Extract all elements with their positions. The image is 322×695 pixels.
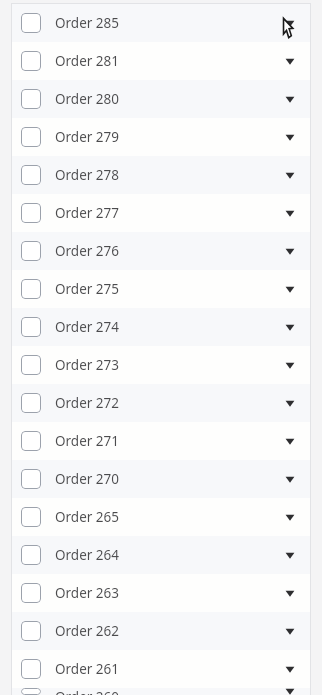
button[interactable]: Select order bbox=[21, 688, 41, 695]
button[interactable]: Expand order bbox=[277, 390, 303, 416]
staticText: Order 280 bbox=[55, 90, 120, 108]
button[interactable]: Select order bbox=[21, 203, 41, 223]
button[interactable]: Select order bbox=[21, 393, 41, 413]
button[interactable]: Select order bbox=[21, 165, 41, 185]
button[interactable]: Select order bbox=[11, 270, 311, 308]
button[interactable]: Select order bbox=[11, 650, 311, 688]
staticText: Order 264 bbox=[55, 546, 120, 564]
staticText: Order 263 bbox=[55, 584, 120, 602]
button[interactable]: Expand order bbox=[277, 162, 303, 188]
button[interactable]: Select order bbox=[11, 232, 311, 270]
button[interactable]: Select order bbox=[21, 13, 41, 33]
button[interactable]: Expand order bbox=[277, 428, 303, 454]
button[interactable]: Select order bbox=[11, 346, 311, 384]
button[interactable]: Expand order bbox=[277, 86, 303, 112]
button[interactable]: Expand order bbox=[277, 276, 303, 302]
button[interactable]: Select order bbox=[11, 80, 311, 118]
button[interactable]: Select order bbox=[11, 156, 311, 194]
button[interactable]: Select order bbox=[21, 89, 41, 109]
button[interactable]: Expand order bbox=[277, 314, 303, 340]
button[interactable]: Expand order bbox=[277, 48, 303, 74]
button[interactable]: Select order bbox=[21, 241, 41, 261]
button[interactable]: Expand order bbox=[277, 466, 303, 492]
staticText: Order 279 bbox=[55, 128, 120, 146]
button[interactable]: Select order bbox=[11, 574, 311, 612]
staticText: Order 276 bbox=[55, 242, 120, 260]
staticText: Order 273 bbox=[55, 356, 120, 374]
staticText: Order 270 bbox=[55, 470, 120, 488]
button[interactable]: Expand order bbox=[277, 124, 303, 150]
button[interactable]: Expand order bbox=[277, 580, 303, 606]
staticText: Order 275 bbox=[55, 280, 120, 298]
button[interactable]: Expand order bbox=[277, 542, 303, 568]
staticText: Order 262 bbox=[55, 622, 120, 640]
button[interactable]: Select order bbox=[21, 507, 41, 527]
button[interactable]: Select order bbox=[21, 355, 41, 375]
button[interactable]: Select order bbox=[21, 127, 41, 147]
button[interactable]: Expand order bbox=[277, 656, 303, 682]
button[interactable]: Expand order bbox=[277, 200, 303, 226]
staticText: Order 265 bbox=[55, 508, 120, 526]
staticText: Order 274 bbox=[55, 318, 120, 336]
button[interactable]: Select order bbox=[11, 308, 311, 346]
button[interactable]: Select order bbox=[11, 422, 311, 460]
staticText: Order 261 bbox=[55, 660, 120, 678]
button[interactable]: Select order bbox=[21, 583, 41, 603]
button[interactable]: Select order bbox=[11, 498, 311, 536]
button[interactable]: Select order bbox=[11, 536, 311, 574]
staticText: Order 278 bbox=[55, 166, 120, 184]
button[interactable]: Select order bbox=[11, 4, 311, 42]
staticText: Order 281 bbox=[55, 52, 120, 70]
staticText: Order 277 bbox=[55, 204, 120, 222]
button[interactable]: Select order bbox=[11, 384, 311, 422]
button[interactable]: Expand order bbox=[277, 238, 303, 264]
button[interactable]: Select order bbox=[21, 51, 41, 71]
button[interactable]: Expand order bbox=[277, 618, 303, 644]
button[interactable]: Expand order bbox=[277, 10, 303, 36]
staticText: Order 272 bbox=[55, 394, 120, 412]
button[interactable]: Select order bbox=[21, 469, 41, 489]
button[interactable]: Select order bbox=[21, 621, 41, 641]
button[interactable]: Select order bbox=[11, 194, 311, 232]
button[interactable]: Select order bbox=[11, 612, 311, 650]
staticText: Order 285 bbox=[55, 14, 120, 32]
button[interactable]: Select order bbox=[21, 659, 41, 679]
staticText: Order 271 bbox=[55, 432, 120, 450]
button[interactable]: Expand order bbox=[277, 504, 303, 530]
button[interactable]: Select order bbox=[21, 545, 41, 565]
button[interactable]: Select order bbox=[21, 431, 41, 451]
staticText: Order 260 bbox=[55, 688, 120, 695]
button[interactable]: Select order bbox=[11, 42, 311, 80]
button[interactable]: Expand order bbox=[277, 688, 303, 695]
button[interactable]: Select order bbox=[11, 688, 311, 695]
button[interactable]: Select order bbox=[21, 279, 41, 299]
button[interactable]: Select order bbox=[11, 118, 311, 156]
button[interactable]: Expand order bbox=[277, 352, 303, 378]
button[interactable]: Select order bbox=[21, 317, 41, 337]
button[interactable]: Select order bbox=[11, 460, 311, 498]
